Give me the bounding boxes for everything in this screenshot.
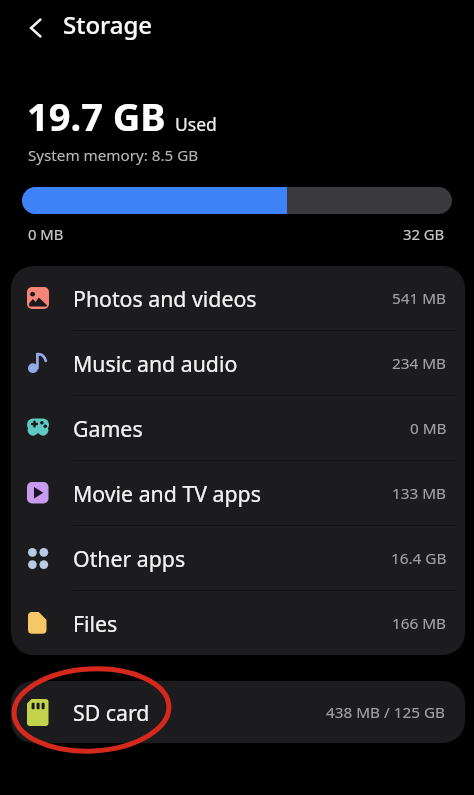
button[interactable]: Other apps — [11, 526, 465, 590]
staticText: 19.7 GB — [27, 90, 166, 142]
staticText: 166 MB — [392, 613, 447, 634]
staticText: Games — [73, 414, 143, 443]
staticText: 234 MB — [392, 353, 447, 374]
button[interactable]: Movie and TV apps — [11, 461, 465, 525]
button[interactable]: Files — [11, 591, 465, 655]
staticText: Files — [73, 609, 118, 638]
staticText: 16.4 GB — [391, 548, 447, 569]
staticText: 541 MB — [392, 288, 447, 309]
button[interactable]: SD card — [11, 681, 465, 743]
button[interactable]: Photos and videos — [11, 266, 465, 330]
button[interactable]: Games — [11, 396, 465, 460]
staticText: Movie and TV apps — [73, 479, 261, 508]
staticText: 438 MB / 125 GB — [326, 702, 445, 723]
button[interactable] — [24, 15, 48, 41]
staticText: System memory: 8.5 GB — [28, 145, 199, 166]
staticText: Photos and videos — [73, 284, 257, 313]
staticText: Storage — [63, 8, 153, 41]
staticText: SD card — [73, 698, 150, 727]
staticText: Music and audio — [73, 349, 238, 378]
staticText: Used — [175, 112, 217, 136]
staticText: Other apps — [73, 544, 186, 573]
staticText: 0 MB — [410, 418, 447, 439]
button[interactable]: Music and audio — [11, 331, 465, 395]
staticText: 133 MB — [392, 483, 447, 504]
staticText: 0 MB — [28, 224, 64, 244]
staticText: 32 GB — [403, 224, 445, 244]
